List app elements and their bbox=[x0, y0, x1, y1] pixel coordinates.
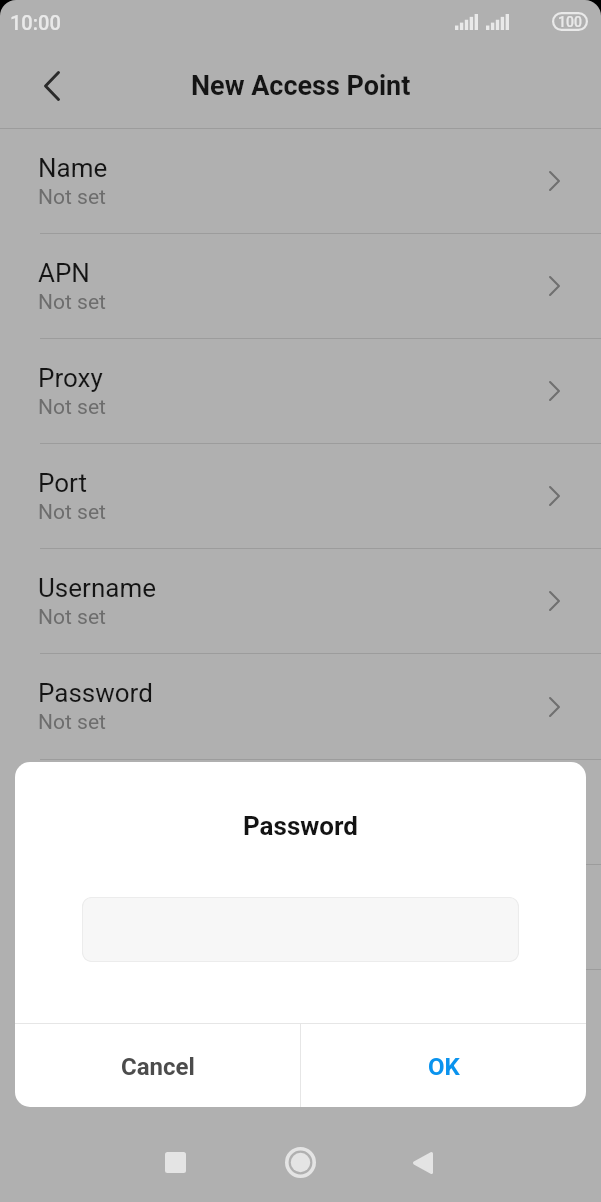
staticText: Not set bbox=[38, 710, 106, 735]
staticText: Not set bbox=[38, 290, 106, 315]
staticText: Not set bbox=[38, 605, 106, 630]
staticText: Proxy bbox=[38, 363, 103, 393]
staticText: Password bbox=[38, 678, 153, 708]
staticText: Not set bbox=[38, 921, 106, 946]
button[interactable]: Proxy bbox=[0, 338, 601, 443]
button[interactable]: Home bbox=[272, 1134, 329, 1191]
staticText: Name bbox=[38, 153, 108, 183]
button[interactable]: Recent apps bbox=[147, 1134, 204, 1191]
button[interactable]: MMSC bbox=[0, 864, 601, 969]
button[interactable]: MMS proxy bbox=[0, 969, 601, 1075]
button[interactable]: Port bbox=[0, 443, 601, 548]
button[interactable]: Password bbox=[0, 653, 601, 759]
staticText: MMS proxy bbox=[38, 994, 169, 1024]
button[interactable]: APN bbox=[0, 233, 601, 338]
staticText: OK bbox=[428, 1053, 460, 1081]
staticText: MMSC bbox=[38, 889, 116, 919]
staticText: New Access Point bbox=[191, 70, 411, 102]
staticText: Not set bbox=[38, 500, 106, 525]
staticText: Port bbox=[38, 468, 88, 498]
staticText: Not set bbox=[38, 185, 106, 210]
staticText: 10:00 bbox=[10, 11, 61, 34]
button[interactable]: Name bbox=[0, 129, 601, 233]
button[interactable]: OK bbox=[301, 1024, 586, 1107]
button[interactable]: Cancel bbox=[15, 1024, 300, 1107]
staticText: Not set bbox=[38, 395, 106, 420]
staticText: 100 bbox=[558, 14, 582, 30]
staticText: Cancel bbox=[121, 1053, 195, 1081]
button[interactable]: Username bbox=[0, 548, 601, 653]
button[interactable]: Server bbox=[0, 759, 601, 864]
button[interactable]: Navigate up bbox=[30, 64, 74, 108]
staticText: Password bbox=[243, 811, 358, 841]
staticText: Username bbox=[38, 573, 156, 603]
button[interactable]: Back bbox=[394, 1134, 451, 1191]
staticText: APN bbox=[38, 258, 90, 288]
